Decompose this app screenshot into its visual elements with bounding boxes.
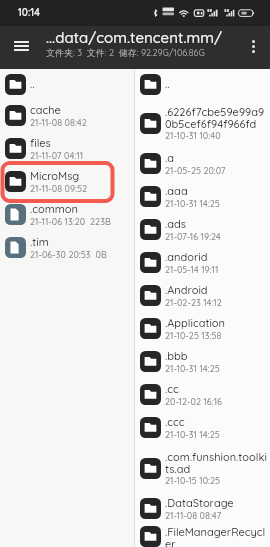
staticText: 21-02-23 14:12 [165, 297, 222, 308]
button[interactable]: .ccc [135, 411, 270, 444]
button[interactable]: .Application [135, 312, 270, 345]
button[interactable]: .6226f7cbe59e99a90b5cef6f94f966fd [135, 99, 270, 147]
button[interactable]: .. [135, 69, 270, 99]
button[interactable]: .cc [135, 378, 270, 411]
button[interactable]: .com.funshion.toolkits.ad [135, 444, 270, 492]
staticText: .bbb [165, 349, 188, 363]
button[interactable]: .andorid [135, 246, 270, 279]
staticText: 10:14 [18, 6, 40, 19]
staticText: 21-06-30 20:53 0B [30, 249, 107, 260]
staticText: 21-11-07 04:11 [30, 150, 84, 161]
staticText: 21-07-16 19:24 [165, 231, 221, 242]
button[interactable]: Menu [7, 31, 36, 60]
button[interactable]: .DataStorage [135, 492, 270, 525]
staticText: .Android [165, 283, 208, 297]
staticText: .Application [165, 316, 225, 330]
staticText: 20-12-02 16:16 [165, 396, 222, 407]
button[interactable]: .ads [135, 213, 270, 246]
button[interactable]: .FileManagerRecycler [135, 525, 270, 547]
staticText: 21-10-15 10:25 [165, 475, 221, 486]
button[interactable]: .common [0, 198, 134, 231]
button[interactable]: .. [0, 69, 134, 99]
staticText: ...data/com.tencent.mm/ [46, 28, 222, 47]
staticText: .a [165, 151, 174, 165]
staticText: cache [30, 103, 61, 117]
staticText: 21-10-31 14:25 [165, 198, 220, 209]
button[interactable]: .aaa [135, 180, 270, 213]
staticText: .aaa [165, 184, 188, 198]
staticText: .. [30, 77, 35, 91]
staticText: .. [165, 77, 170, 91]
staticText: .ccc [165, 415, 185, 429]
button[interactable]: More options [240, 33, 266, 59]
staticText: 21-11-08 09:52 [30, 183, 88, 194]
staticText: 21-10-31 14:25 [165, 363, 220, 374]
button[interactable]: MicroMsg [0, 165, 134, 198]
staticText: .ads [165, 217, 186, 231]
staticText: .andorid [165, 250, 208, 264]
staticText: .common [30, 202, 78, 216]
staticText: .FileManagerRecycler [165, 525, 270, 547]
staticText: MicroMsg [30, 169, 80, 183]
staticText: 21-10-31 10:40 [165, 130, 221, 141]
staticText: files [30, 136, 51, 150]
button[interactable]: cache [0, 99, 134, 132]
staticText: 21-10-25 13:58 [165, 330, 222, 341]
button[interactable]: files [0, 132, 134, 165]
staticText: .tim [30, 235, 49, 249]
button[interactable]: .a [135, 147, 270, 180]
staticText: 文件夹: 3 文件: 2 储存: 92.29G/106.86G [46, 47, 205, 59]
staticText: 21-10-31 14:25 [165, 429, 220, 440]
button[interactable]: .tim [0, 231, 134, 264]
staticText: 21-05-14 19:11 [165, 264, 219, 275]
staticText: 21-05-25 20:07 [165, 165, 226, 176]
button[interactable]: .Android [135, 279, 270, 312]
staticText: 21-11-08 08:42 [30, 117, 87, 128]
staticText: .cc [165, 382, 179, 396]
staticText: .com.funshion.toolkits.ad [165, 450, 270, 475]
staticText: .DataStorage [165, 496, 234, 510]
staticText: 21-11-08 08:47 [165, 510, 222, 521]
staticText: 21-11-06 13:20 223B [30, 216, 111, 227]
staticText: .6226f7cbe59e99a90b5cef6f94f966fd [165, 105, 270, 130]
button[interactable]: .bbb [135, 345, 270, 378]
